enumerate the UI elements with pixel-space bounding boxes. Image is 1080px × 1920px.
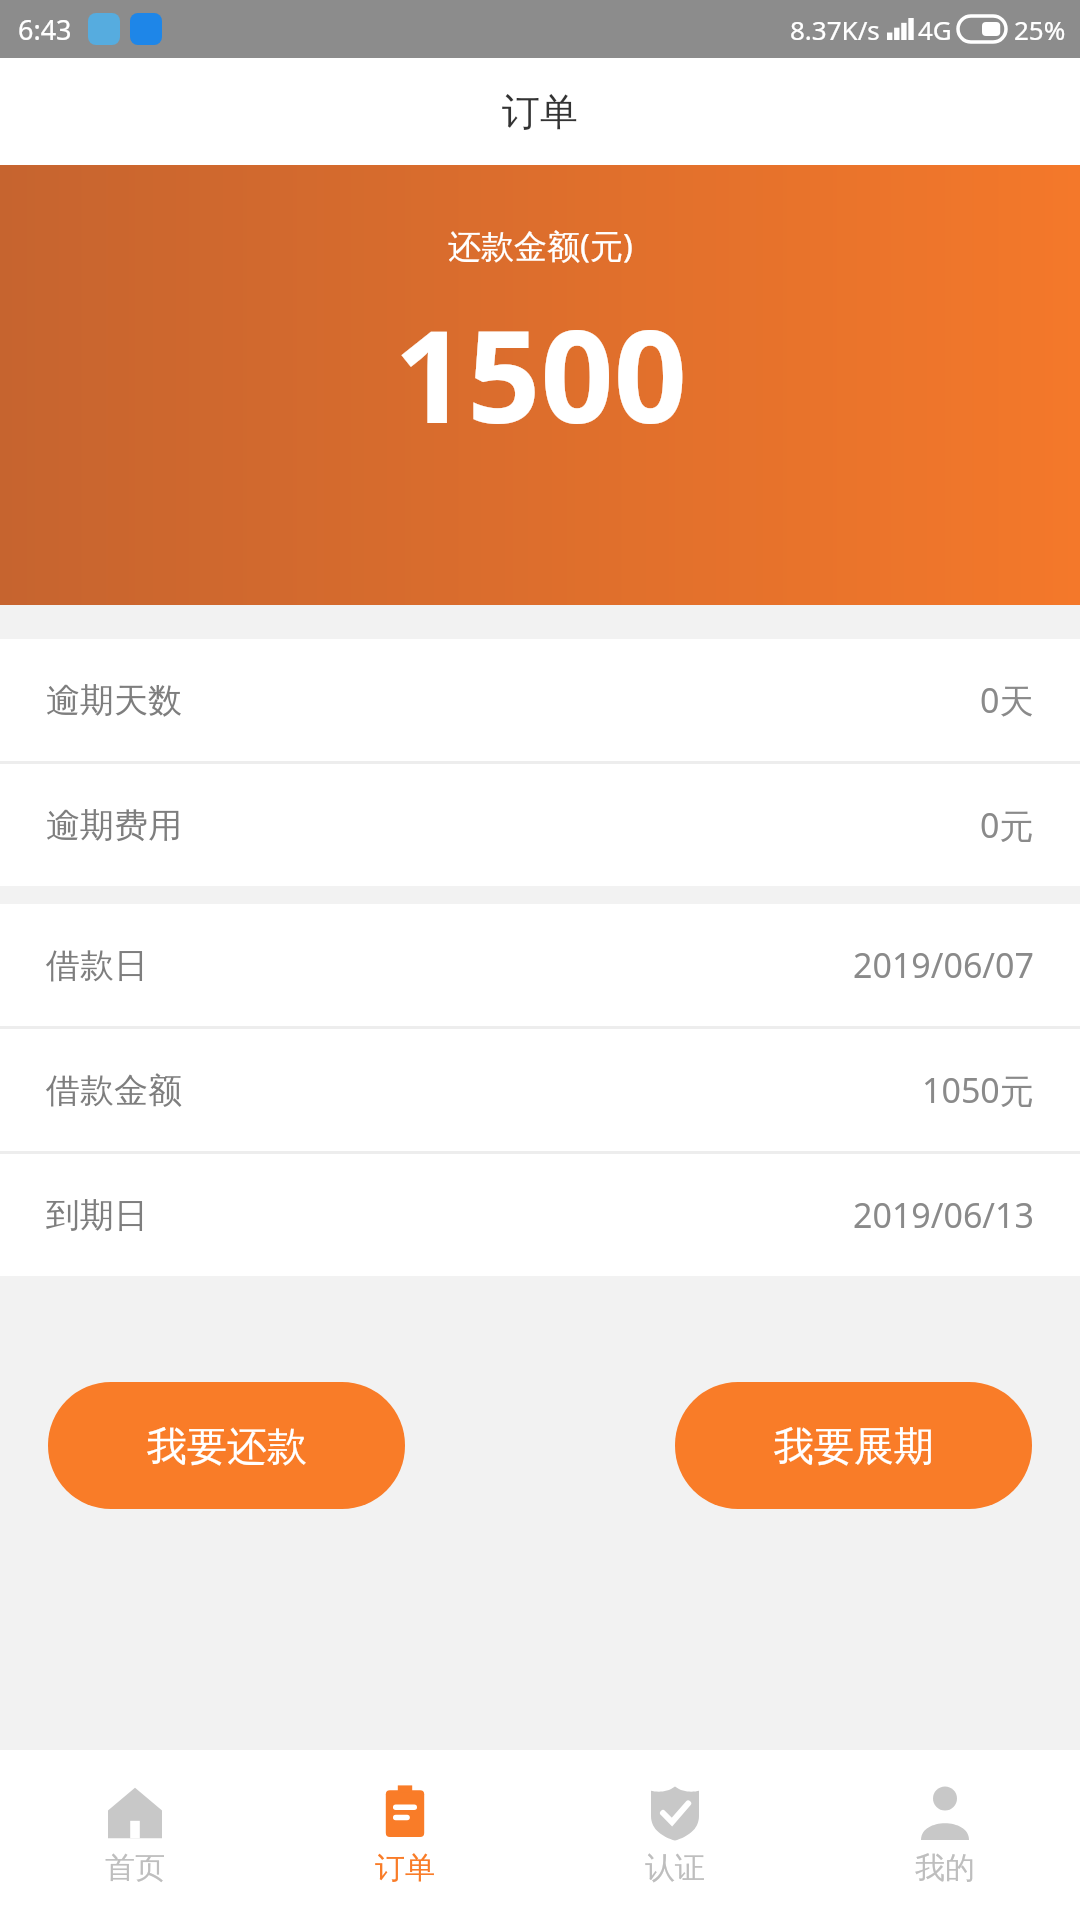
- staticText: 我要展期: [774, 1421, 934, 1471]
- staticText: 订单: [502, 88, 578, 136]
- button[interactable]: 借款日: [0, 904, 1080, 1026]
- staticText: 2019/06/07: [853, 942, 1034, 988]
- staticText: 逾期天数: [46, 679, 182, 722]
- staticText: 借款日: [46, 944, 148, 987]
- staticText: 0天: [980, 677, 1034, 723]
- button[interactable]: 认证: [540, 1750, 810, 1920]
- button[interactable]: 到期日: [0, 1154, 1080, 1276]
- staticText: 2019/06/13: [853, 1192, 1034, 1238]
- button[interactable]: 首页: [0, 1750, 270, 1920]
- button[interactable]: 逾期费用: [0, 764, 1080, 886]
- button[interactable]: 逾期天数: [0, 639, 1080, 761]
- button[interactable]: 订单: [270, 1750, 540, 1920]
- staticText: 8.37K/s: [790, 12, 880, 47]
- staticText: 4G: [918, 12, 952, 47]
- staticText: 借款金额: [46, 1069, 182, 1112]
- staticText: 认证: [645, 1849, 705, 1887]
- staticText: 0元: [980, 802, 1034, 848]
- staticText: 我要还款: [147, 1421, 307, 1471]
- button[interactable]: 我要展期: [675, 1382, 1032, 1509]
- staticText: 6:43: [18, 11, 72, 48]
- staticText: 1500: [394, 286, 687, 460]
- button[interactable]: 我的: [810, 1750, 1080, 1920]
- button[interactable]: 借款金额: [0, 1029, 1080, 1151]
- staticText: 25%: [1014, 12, 1066, 47]
- staticText: 首页: [105, 1849, 165, 1887]
- staticText: 还款金额(元): [448, 223, 633, 268]
- staticText: 到期日: [46, 1194, 148, 1237]
- staticText: 订单: [375, 1849, 435, 1887]
- staticText: 逾期费用: [46, 804, 182, 847]
- staticText: 我的: [915, 1849, 975, 1887]
- button[interactable]: 我要还款: [48, 1382, 405, 1509]
- staticText: 1050元: [922, 1067, 1034, 1113]
